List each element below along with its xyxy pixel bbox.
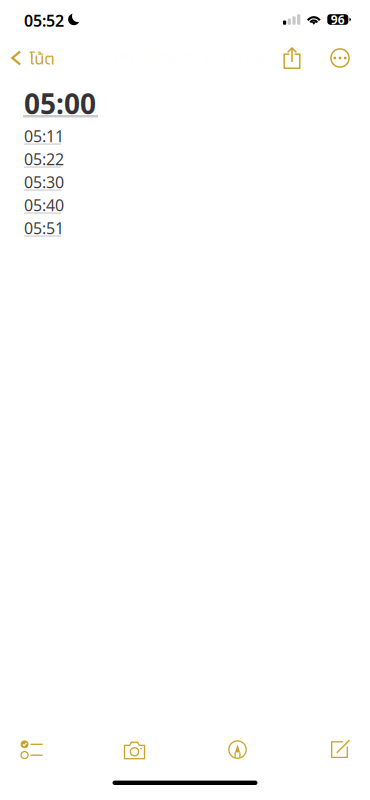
button[interactable]: Share: [270, 39, 314, 77]
staticText: 05:40: [24, 194, 64, 216]
staticText: 05:11: [24, 125, 64, 147]
staticText: 05:22: [24, 148, 64, 170]
button[interactable]: Markup: [205, 730, 269, 770]
button[interactable]: Camera: [102, 730, 166, 770]
staticText: 05:51: [24, 217, 64, 239]
staticText: 05:30: [24, 171, 64, 193]
button[interactable]: โน้ต: [0, 39, 63, 77]
button[interactable]: Checklist: [0, 730, 63, 770]
staticText: 05:52: [24, 10, 64, 31]
staticText: ใช้งานได้ทุกวัน จะแจ้งให้ทราบ: [112, 48, 290, 68]
staticText: 96: [331, 11, 345, 27]
staticText: 05:00: [24, 85, 96, 122]
staticText: โน้ต: [29, 47, 55, 72]
button[interactable]: New Note: [308, 730, 370, 770]
button[interactable]: More: [320, 39, 360, 77]
